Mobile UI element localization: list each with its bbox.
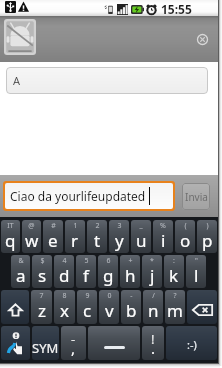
button[interactable]: 0: [99, 290, 119, 324]
staticText: n: [148, 299, 159, 322]
staticText: 3: [117, 221, 122, 231]
staticText: Ciao da yourlifeupdated: [10, 188, 146, 204]
staticText: .: [151, 338, 156, 358]
button[interactable]: 4: [54, 255, 74, 288]
button[interactable]: Symbols: [32, 326, 59, 360]
staticText: ?: [173, 291, 177, 301]
staticText: w: [25, 229, 39, 252]
staticText: 8: [62, 291, 67, 301]
button[interactable]: ": [186, 255, 206, 288]
staticText: :-): [187, 337, 197, 352]
button[interactable]: 8: [54, 290, 75, 324]
staticText: q: [5, 229, 16, 252]
staticText: c: [83, 299, 92, 322]
staticText: e: [48, 229, 58, 252]
staticText: $: [40, 256, 45, 266]
staticText: x: [60, 299, 69, 322]
button[interactable]: Emoticon: [166, 326, 217, 360]
button[interactable]: [88, 326, 140, 360]
button[interactable]: Input method: [1, 326, 30, 360]
staticText: p: [202, 229, 213, 252]
staticText: g: [103, 264, 114, 287]
staticText: &: [18, 256, 24, 266]
button[interactable]: &: [11, 255, 30, 288]
staticText: k: [169, 264, 179, 287]
staticText: /: [152, 291, 155, 301]
staticText: 7: [39, 291, 44, 301]
button[interactable]: Shift: [1, 290, 29, 324]
staticText: s: [38, 264, 47, 287]
staticText: m: [167, 299, 183, 322]
button[interactable]: 5: [76, 255, 96, 288]
button[interactable]: @: [22, 220, 41, 253]
staticText: v: [105, 299, 114, 322]
button[interactable]: ): [197, 220, 217, 253]
staticText: -: [130, 291, 133, 301]
button[interactable]: Backspace: [187, 290, 217, 324]
button[interactable]: *: [142, 255, 162, 288]
button[interactable]: IT: [1, 220, 20, 253]
button[interactable]: %: [153, 220, 173, 253]
staticText: o: [180, 229, 191, 252]
button[interactable]: Ciao da yourlifeupdated: [5, 183, 173, 209]
staticText: SYM: [32, 339, 59, 357]
button[interactable]: -: [61, 326, 86, 360]
staticText: :: [173, 256, 175, 266]
staticText: i: [161, 229, 166, 252]
staticText: d: [59, 264, 70, 287]
staticText: l: [194, 264, 199, 287]
staticText: 9: [85, 291, 90, 301]
staticText: _: [139, 221, 143, 231]
staticText: ,: [71, 338, 76, 358]
staticText: -: [71, 330, 76, 348]
button[interactable]: -: [121, 290, 141, 324]
button[interactable]: /: [143, 290, 163, 324]
staticText: #: [51, 221, 56, 231]
staticText: z: [38, 299, 46, 322]
staticText: IT: [7, 221, 14, 231]
button[interactable]: :: [164, 255, 184, 288]
staticText: r: [71, 229, 79, 252]
staticText: t: [94, 229, 101, 252]
staticText: 5: [84, 256, 89, 266]
staticText: j: [150, 264, 155, 287]
button[interactable]: 3: [109, 220, 129, 253]
staticText: b: [126, 299, 137, 322]
staticText: ): [206, 221, 209, 231]
staticText: A: [13, 73, 21, 88]
staticText: 6: [106, 256, 111, 266]
button[interactable]: ?: [165, 290, 185, 324]
button[interactable]: 2: [87, 220, 107, 253]
staticText: 2: [95, 221, 100, 231]
button[interactable]: (: [175, 220, 195, 253]
staticText: 15:55: [161, 1, 192, 17]
staticText: f: [83, 264, 89, 287]
staticText: h: [125, 264, 136, 287]
button[interactable]: Close: [195, 32, 210, 47]
button[interactable]: #: [43, 220, 63, 253]
staticText: !: [151, 330, 155, 348]
button[interactable]: !: [142, 326, 164, 360]
staticText: +: [128, 256, 133, 266]
staticText: ": [195, 256, 198, 266]
staticText: (: [184, 221, 187, 231]
button[interactable]: _: [131, 220, 151, 253]
staticText: a: [16, 264, 26, 287]
staticText: 1: [73, 221, 78, 231]
staticText: Invia: [185, 190, 208, 204]
button[interactable]: +: [120, 255, 140, 288]
button[interactable]: 6: [98, 255, 118, 288]
staticText: u: [136, 229, 147, 252]
button[interactable]: $: [32, 255, 52, 288]
staticText: 4: [62, 256, 67, 266]
staticText: 0: [107, 291, 112, 301]
button[interactable]: 1: [65, 220, 85, 253]
button[interactable]: 7: [31, 290, 52, 324]
button[interactable]: 9: [77, 290, 97, 324]
staticText: y: [115, 229, 124, 252]
staticText: *: [150, 256, 154, 266]
staticText: @: [28, 221, 35, 231]
button[interactable]: Invia: [182, 183, 210, 210]
staticText: %: [160, 221, 166, 231]
